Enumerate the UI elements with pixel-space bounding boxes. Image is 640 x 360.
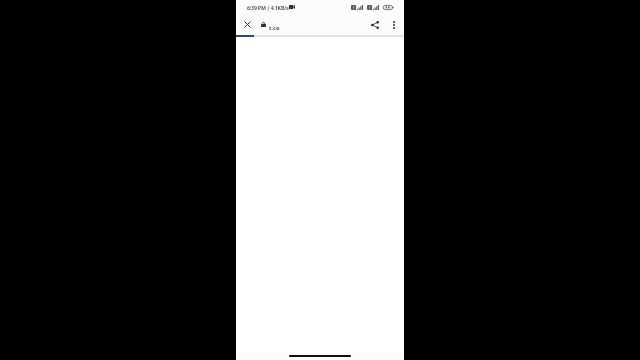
staticText: 6:39 PM | 4.1KB/s	[247, 4, 289, 11]
button[interactable]: t.co	[261, 14, 272, 35]
button[interactable]: More options	[385, 16, 402, 33]
button[interactable]: Close	[239, 16, 256, 33]
button[interactable]: Share	[366, 16, 383, 33]
staticText: t.co	[269, 24, 280, 32]
